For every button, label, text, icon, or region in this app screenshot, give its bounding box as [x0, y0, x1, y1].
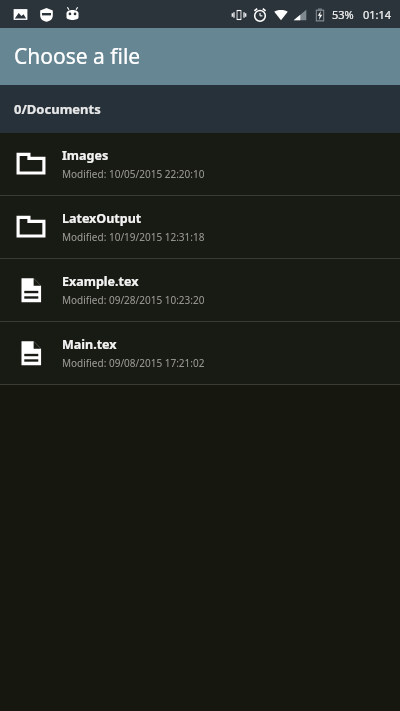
button[interactable]: Choose a file	[0, 28, 400, 85]
button[interactable]: Example.tex	[0, 259, 400, 321]
staticText: LatexOutput	[62, 210, 142, 227]
button[interactable]: 0/Documents	[0, 85, 400, 133]
staticText: Choose a file	[14, 42, 141, 71]
staticText: Images	[62, 147, 109, 164]
staticText: Example.tex	[62, 273, 139, 290]
staticText: Modified: 10/05/2015 22:20:10	[62, 167, 205, 181]
button[interactable]: Main.tex	[0, 322, 400, 384]
staticText: Modified: 10/19/2015 12:31:18	[62, 230, 205, 244]
staticText: 53%	[332, 7, 354, 22]
staticText: Modified: 09/28/2015 10:23:20	[62, 293, 205, 307]
staticText: 0/Documents	[14, 100, 101, 118]
button[interactable]: LatexOutput	[0, 196, 400, 258]
button[interactable]: Images	[0, 133, 400, 195]
staticText: 01:14	[363, 7, 392, 22]
staticText: Modified: 09/08/2015 17:21:02	[62, 356, 205, 370]
staticText: Main.tex	[62, 336, 117, 353]
